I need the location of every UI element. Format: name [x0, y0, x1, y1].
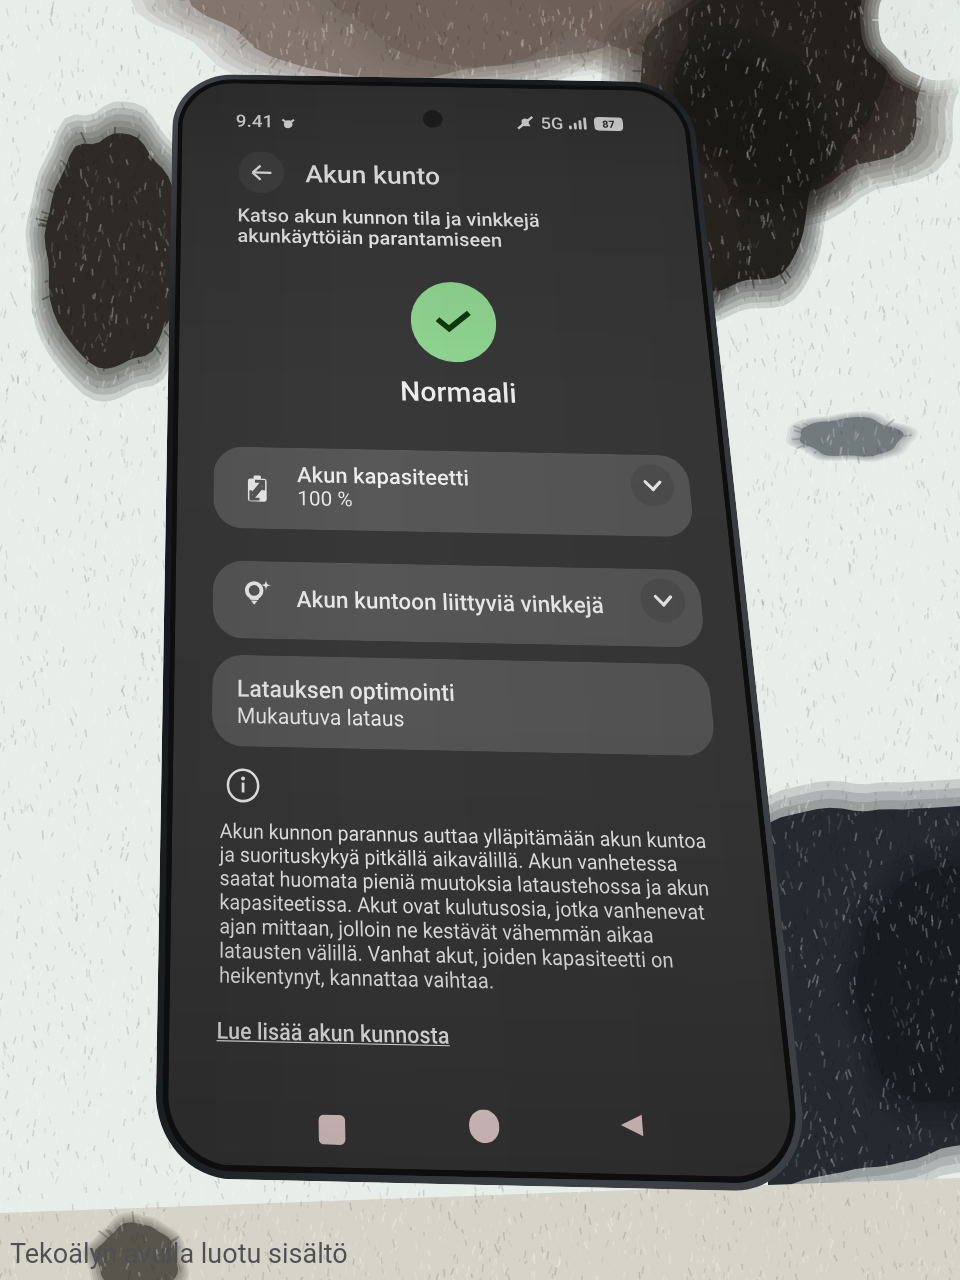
- staticText: Akun kunto: [305, 160, 442, 190]
- button[interactable]: Lue lisää akun kunnosta: [216, 1017, 450, 1050]
- staticText: Akun kapasiteetti: [297, 462, 470, 490]
- button[interactable]: Akun kuntoon liittyviä vinkkejä: [212, 560, 706, 648]
- staticText: 5G: [540, 113, 564, 132]
- button[interactable]: Home: [455, 1095, 512, 1156]
- staticText: 100 %: [297, 487, 353, 512]
- staticText: 9.41: [236, 111, 274, 132]
- staticText: Tekoälyn avulla luotu sisältö: [10, 1238, 348, 1270]
- staticText: Katso akun kunnon tila ja vinkkejä akunk…: [237, 204, 542, 252]
- staticText: Latauksen optimointi: [237, 674, 456, 706]
- staticText: Normaali: [399, 376, 518, 410]
- staticText: Mukautuva lataus: [237, 703, 405, 732]
- staticText: Akun kuntoon liittyviä vinkkejä: [296, 586, 605, 618]
- button[interactable]: Recents: [305, 1099, 360, 1160]
- button[interactable]: Back: [603, 1095, 661, 1156]
- button[interactable]: Akun kapasiteetti: [213, 446, 695, 537]
- button[interactable]: Back: [238, 151, 284, 193]
- staticText: 87: [602, 119, 615, 130]
- staticText: Akun kunnon parannus auttaa ylläpitämään…: [219, 819, 730, 998]
- button[interactable]: Latauksen optimointi: [212, 654, 717, 756]
